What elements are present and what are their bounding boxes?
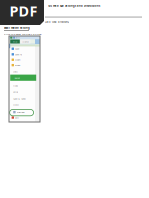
staticText: Options bbox=[16, 111, 24, 114]
staticText: Print bbox=[13, 90, 18, 93]
staticText: TDI Web x2b Settings and Instructions bbox=[48, 4, 100, 7]
staticText: (and Web Browsers) bbox=[45, 20, 69, 23]
staticText: Close bbox=[15, 64, 20, 67]
staticText: File bbox=[13, 40, 17, 43]
staticText: Recent bbox=[14, 76, 20, 79]
staticText: Help bbox=[13, 103, 18, 106]
staticText: Open bbox=[15, 58, 20, 61]
staticText: Home bbox=[22, 40, 28, 43]
staticText: Info bbox=[13, 70, 17, 73]
staticText: Save & Send bbox=[13, 97, 25, 100]
staticText: New bbox=[13, 84, 18, 87]
staticText: Save bbox=[15, 47, 19, 50]
staticText: Excel Macro setting bbox=[4, 26, 30, 29]
staticText: Exit bbox=[15, 116, 19, 119]
staticText: PDF bbox=[9, 1, 37, 21]
staticText: Click the Excel Options button bbox=[4, 32, 42, 36]
staticText: Save As bbox=[15, 53, 22, 56]
